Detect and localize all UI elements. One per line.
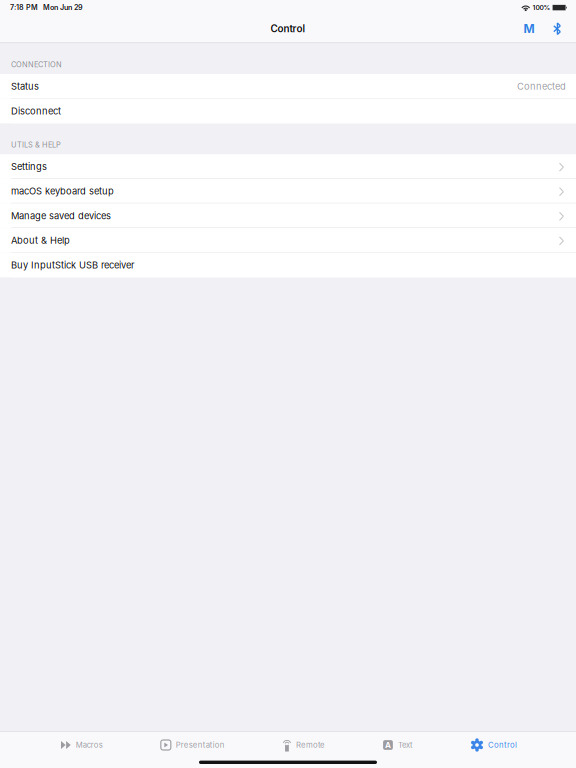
staticText: Text [398, 740, 413, 750]
staticText: Buy InputStick USB receiver [11, 259, 135, 271]
button[interactable]: macOS keyboard setup [0, 179, 576, 203]
button[interactable]: Bluetooth [545, 16, 569, 42]
staticText: Status [11, 81, 39, 92]
button[interactable]: Settings [0, 154, 576, 179]
button[interactable]: About & Help [0, 228, 576, 253]
staticText: Control [270, 23, 305, 35]
staticText: 7:18 PM [10, 3, 38, 12]
button[interactable]: Macro [517, 16, 541, 42]
staticText: Manage saved devices [11, 210, 111, 221]
staticText: Macros [76, 740, 103, 750]
staticText: A [385, 740, 391, 750]
staticText: 100% [533, 3, 551, 12]
staticText: Mon Jun 29 [43, 3, 83, 12]
button[interactable]: Macros [61, 732, 103, 758]
staticText: macOS keyboard setup [11, 186, 114, 197]
button[interactable]: Control [471, 732, 517, 758]
staticText: Disconnect [11, 105, 61, 117]
button[interactable]: Status [0, 74, 576, 99]
staticText: Presentation [176, 740, 225, 750]
button[interactable]: A [383, 732, 413, 758]
staticText: Connected [517, 81, 566, 92]
button[interactable]: Disconnect [0, 99, 576, 123]
staticText: About & Help [11, 235, 70, 246]
button[interactable]: Manage saved devices [0, 203, 576, 228]
button[interactable]: Buy InputStick USB receiver [0, 253, 576, 277]
button[interactable]: Remote [283, 732, 325, 758]
staticText: M [523, 21, 534, 36]
button[interactable]: Presentation [161, 732, 225, 758]
staticText: Remote [296, 740, 325, 750]
staticText: UTILS & HELP [11, 140, 61, 149]
staticText: Settings [11, 161, 47, 172]
staticText: CONNECTION [11, 60, 62, 69]
staticText: Control [488, 740, 517, 750]
